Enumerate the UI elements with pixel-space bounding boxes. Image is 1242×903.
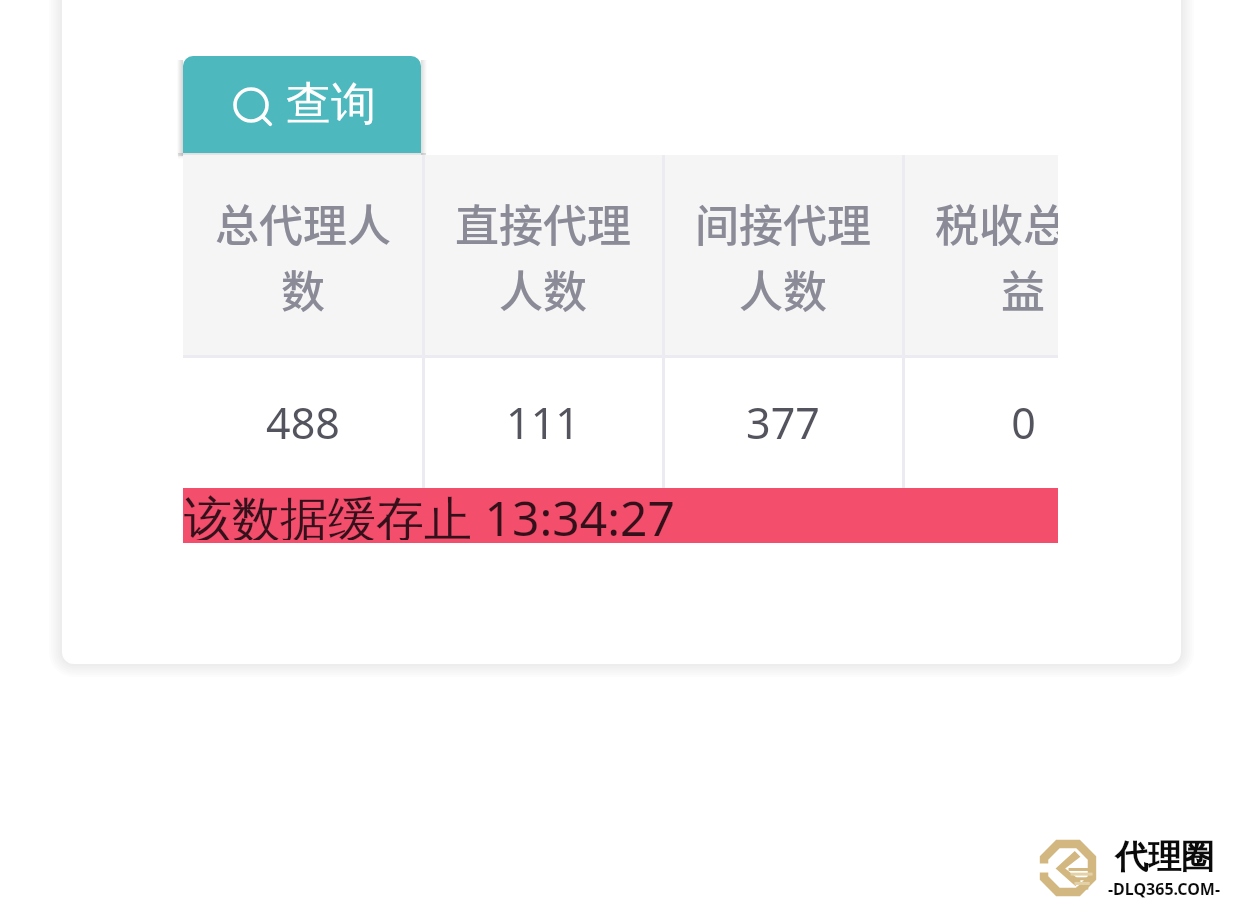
staticText: 直接代理人数 [450, 191, 636, 321]
staticText: 488 [266, 393, 340, 452]
other: Search [228, 82, 274, 128]
staticText: 查询 [286, 76, 376, 133]
button[interactable]: Search [183, 56, 421, 153]
staticText: 111 [506, 393, 580, 452]
staticText: 代理圈 [1115, 836, 1214, 878]
staticText: 总代理人数 [210, 191, 396, 321]
staticText: 该数据缓存止 13:34:27 [184, 485, 675, 540]
staticText: -DLQ365.COM- [1108, 878, 1221, 900]
staticText: 377 [746, 393, 820, 452]
staticText: 税收总收益 [930, 191, 1058, 321]
staticText: 间接代理人数 [690, 191, 876, 321]
staticText: 0 [1011, 393, 1036, 452]
